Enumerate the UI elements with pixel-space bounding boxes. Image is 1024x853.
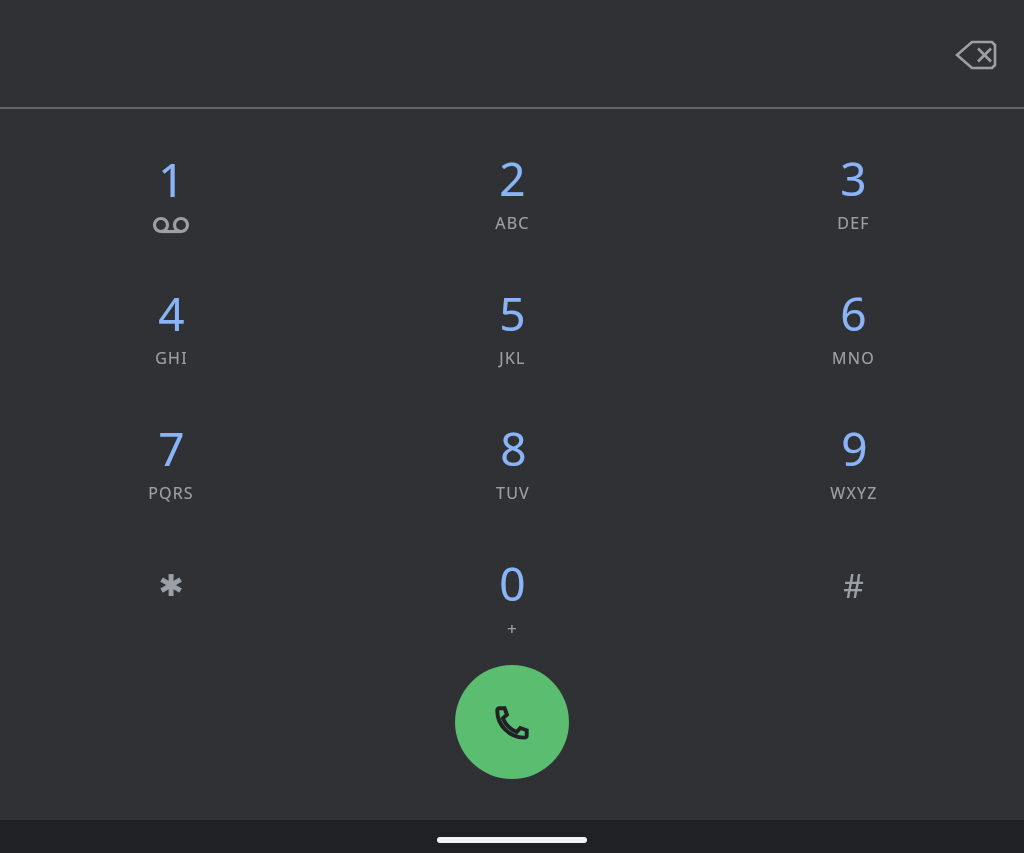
button[interactable]: Key 3 [683,123,1024,258]
button[interactable]: Key 7 [0,393,342,528]
button[interactable]: Key 9 [683,393,1024,528]
staticText: GHI [155,347,188,369]
button[interactable]: Key ✱ [0,528,342,663]
staticText: JKL [499,347,526,369]
staticText: 1 [158,148,185,211]
staticText: 0 [499,552,526,615]
button[interactable]: Key 1 [0,123,342,258]
staticText: 6 [840,282,867,345]
staticText: DEF [837,212,870,234]
staticText: 3 [840,147,867,210]
staticText: 7 [158,417,185,480]
button[interactable]: Key 6 [683,258,1024,393]
button[interactable]: Key 5 [342,258,683,393]
staticText: 8 [500,417,527,480]
staticText: # [843,564,864,608]
staticText: MNO [832,347,875,369]
staticText: ABC [495,212,530,234]
staticText: PQRS [148,482,194,504]
staticText: 9 [841,417,868,480]
staticText: 4 [158,282,185,345]
button[interactable]: Key 8 [342,393,683,528]
button[interactable]: Key 0 [342,528,683,663]
staticText: 2 [499,147,526,210]
button[interactable]: Backspace [944,23,1008,87]
button[interactable]: Call [455,665,569,779]
button[interactable]: Key 4 [0,258,342,393]
button[interactable]: Key # [683,528,1024,663]
staticText: ✱ [158,568,184,603]
button[interactable]: Key 2 [342,123,683,258]
staticText: 5 [499,282,526,345]
staticText: TUV [496,482,530,504]
staticText: + [507,617,518,640]
staticText: WXYZ [830,482,878,504]
